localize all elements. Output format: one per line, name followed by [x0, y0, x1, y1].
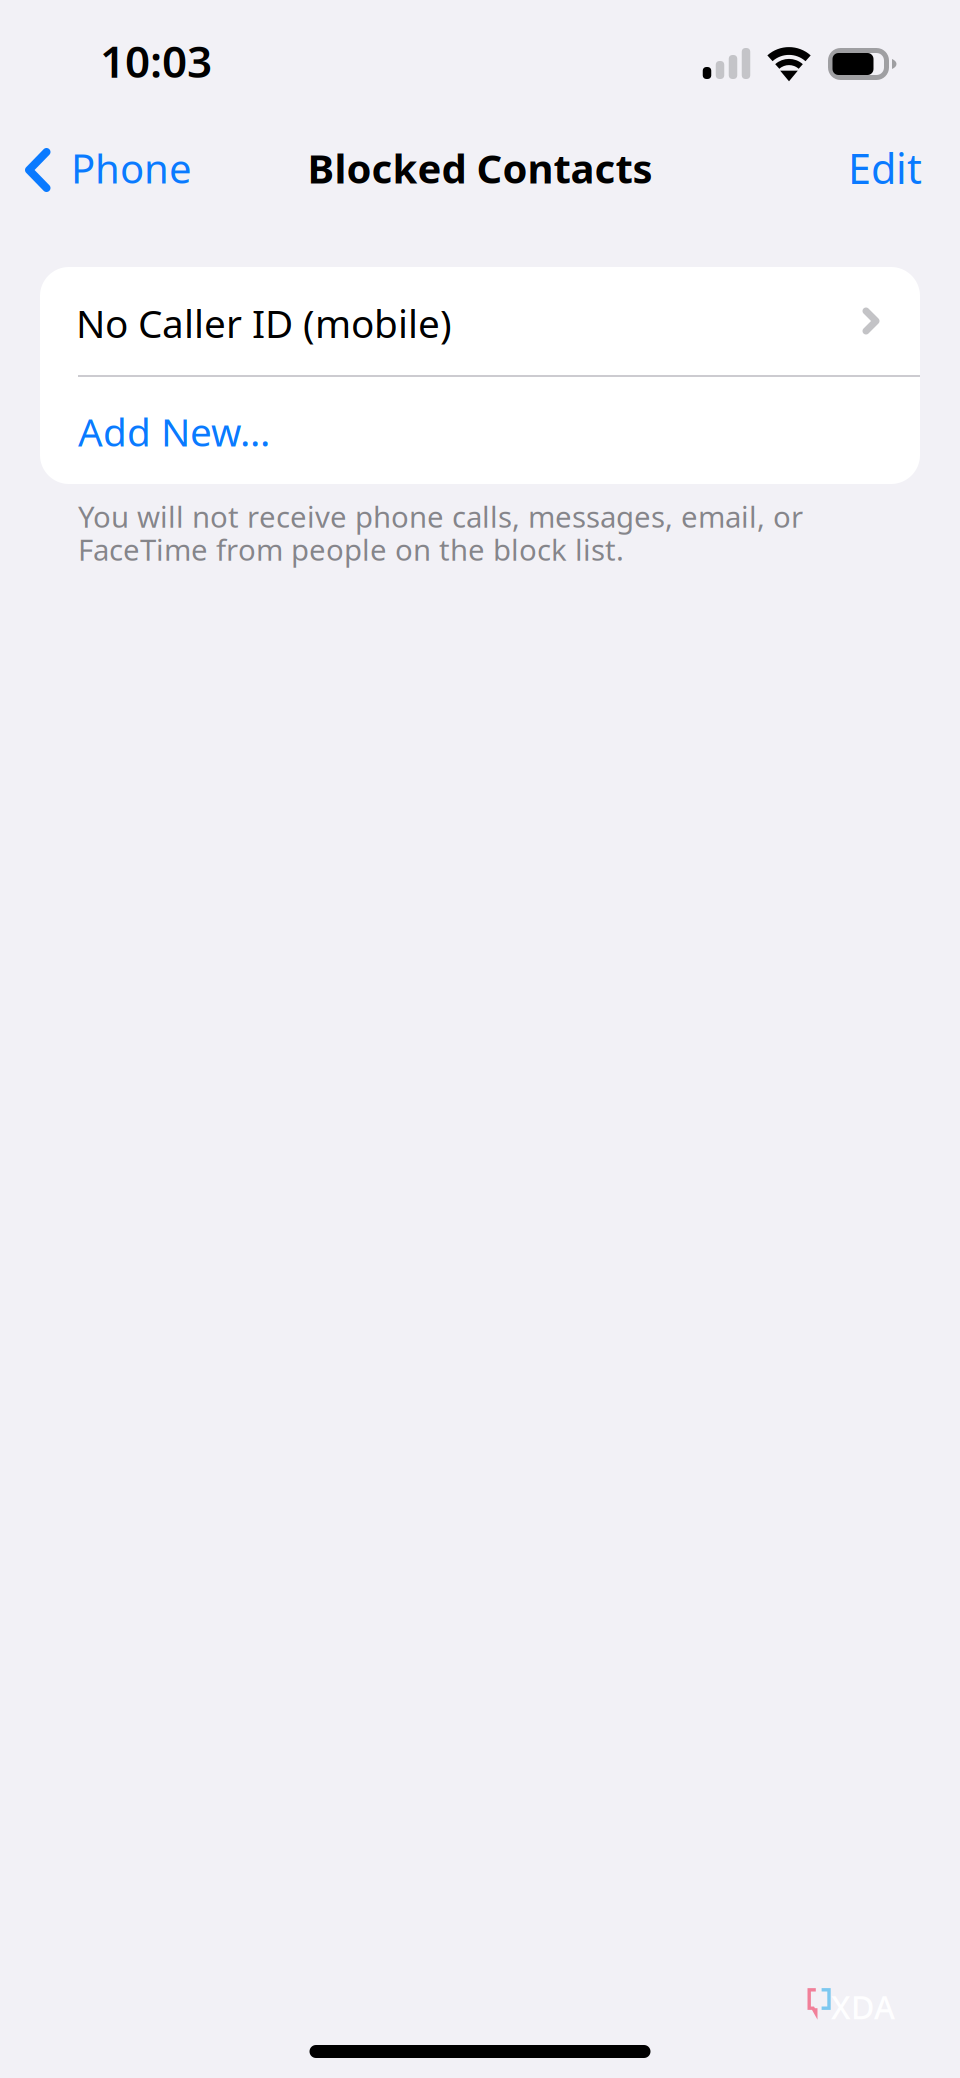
staticText: No Caller ID (mobile) — [76, 297, 452, 349]
button[interactable]: Add New... — [40, 377, 920, 484]
button[interactable]: Edit — [824, 124, 960, 216]
staticText: FaceTime from people on the block list. — [78, 530, 624, 569]
staticText: XDA — [831, 1985, 895, 2028]
staticText: Blocked Contacts — [307, 141, 652, 194]
staticText: You will not receive phone calls, messag… — [78, 497, 803, 536]
staticText: Phone — [71, 141, 192, 194]
staticText: Edit — [848, 141, 922, 195]
staticText: Add New... — [78, 406, 270, 457]
button[interactable]: No Caller ID (mobile) — [40, 267, 920, 375]
button[interactable]: Phone — [0, 124, 208, 216]
staticText: 10:03 — [100, 32, 212, 90]
